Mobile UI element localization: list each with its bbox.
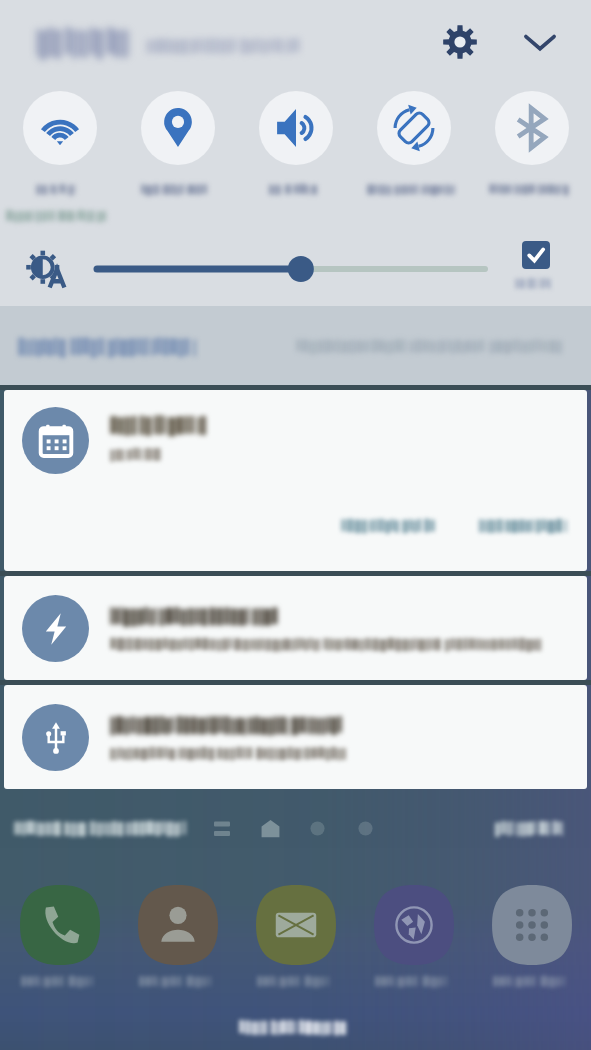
button[interactable]: Phone	[20, 885, 100, 965]
button[interactable]: Auto rotate	[355, 84, 473, 230]
button[interactable]: Dismiss	[327, 501, 455, 549]
button[interactable]: Snooze	[465, 501, 587, 549]
button[interactable]: Wi-Fi	[0, 84, 119, 230]
button[interactable]: Auto brightness	[502, 241, 570, 293]
button[interactable]: Settings	[435, 17, 485, 67]
button[interactable]: Bluetooth	[473, 84, 591, 230]
button[interactable]: USB for file transfer	[4, 685, 587, 789]
button[interactable]: Clear all	[487, 809, 577, 846]
button[interactable]: Internet	[374, 885, 454, 965]
button[interactable]: Messages	[256, 885, 336, 965]
button[interactable]: Brightness	[94, 253, 488, 285]
button[interactable]: Notification settings	[6, 809, 200, 846]
button[interactable]: Meeting notification	[4, 390, 587, 571]
button[interactable]: Apps	[492, 885, 572, 965]
button[interactable]: Collapse panel	[514, 16, 566, 68]
button[interactable]: Contacts	[138, 885, 218, 965]
button[interactable]: Location	[119, 84, 237, 230]
button[interactable]: Sound	[237, 84, 355, 230]
button[interactable]: Quick connect	[0, 306, 591, 385]
button[interactable]: Slow charging	[4, 576, 587, 680]
